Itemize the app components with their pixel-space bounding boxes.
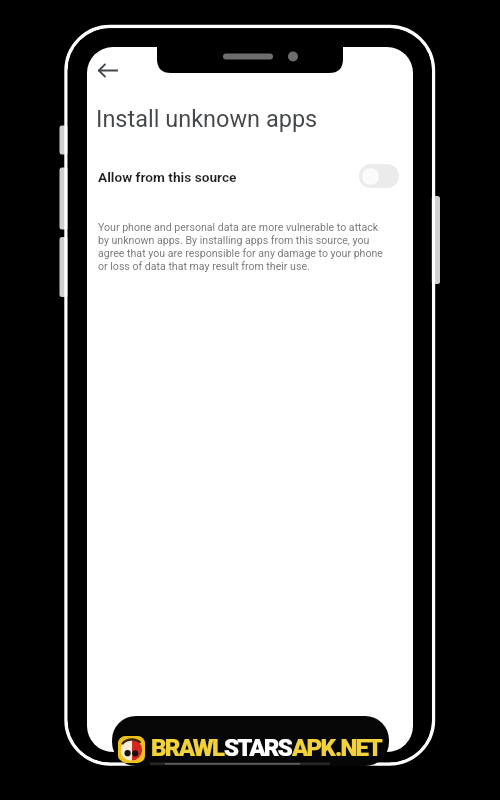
staticText: Allow from this source [98, 169, 237, 185]
staticText: .NET [335, 734, 381, 762]
button[interactable]: Allow from this source [87, 154, 413, 200]
staticText: STARS [224, 734, 292, 762]
staticText: APK [292, 734, 335, 762]
button[interactable]: Navigate up [88, 50, 128, 90]
button[interactable]: BrawlStarsApk.net [112, 716, 389, 766]
staticText: Your phone and personal data are more vu… [98, 221, 383, 273]
staticText: Install unknown apps [96, 105, 318, 133]
button[interactable]: Allow from this source [359, 164, 399, 188]
staticText: BRAWL [151, 734, 224, 762]
